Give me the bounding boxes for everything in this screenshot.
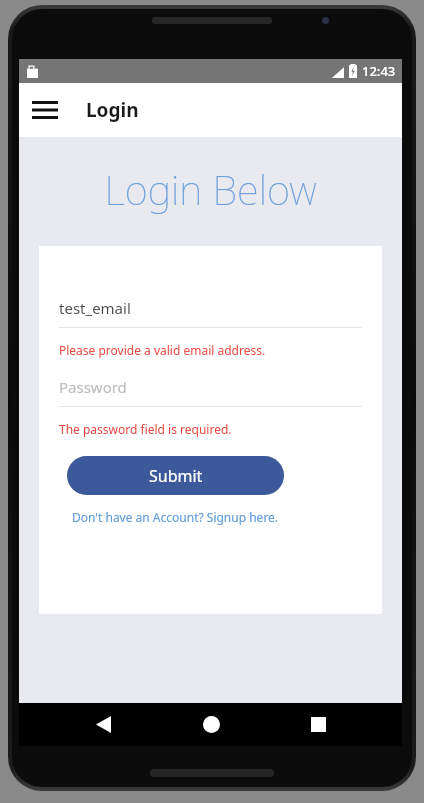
staticText: Password xyxy=(59,377,127,397)
staticText: The password field is required. xyxy=(59,421,232,437)
button[interactable]: Home xyxy=(187,703,235,746)
staticText: Login Below xyxy=(19,162,402,216)
staticText: Submit xyxy=(149,465,203,487)
staticText: Don't have an Account? Signup here. xyxy=(72,509,279,525)
staticText: Login xyxy=(86,97,139,123)
staticText: Please provide a valid email address. xyxy=(59,342,266,358)
staticText: 12:43 xyxy=(362,62,396,80)
button[interactable]: Back xyxy=(79,703,127,746)
button[interactable]: Submit xyxy=(67,456,284,495)
button[interactable]: Recent apps xyxy=(294,703,342,746)
button[interactable]: Open navigation menu xyxy=(23,88,67,132)
staticText: test_email xyxy=(59,298,131,318)
button[interactable]: Don't have an Account? Signup here. xyxy=(67,509,284,525)
